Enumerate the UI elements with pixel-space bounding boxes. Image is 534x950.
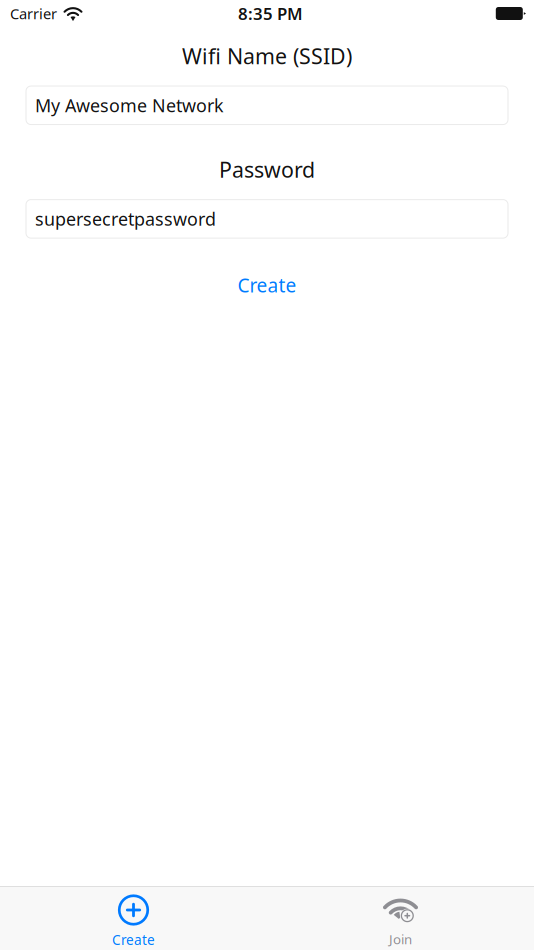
button[interactable]: Create: [223, 268, 310, 302]
button[interactable]: supersecretpassword: [26, 200, 508, 238]
button[interactable]: Join: [267, 887, 534, 950]
button[interactable]: Create: [0, 887, 267, 950]
staticText: Create: [237, 272, 296, 298]
staticText: 8:35 PM: [238, 2, 303, 25]
staticText: Create: [112, 930, 155, 949]
staticText: My Awesome Network: [35, 93, 224, 117]
staticText: supersecretpassword: [35, 207, 216, 231]
staticText: Wifi Name (SSID): [182, 41, 352, 71]
staticText: Carrier: [10, 3, 57, 23]
staticText: Join: [389, 930, 412, 948]
button[interactable]: My Awesome Network: [26, 86, 508, 125]
staticText: Password: [219, 155, 315, 184]
